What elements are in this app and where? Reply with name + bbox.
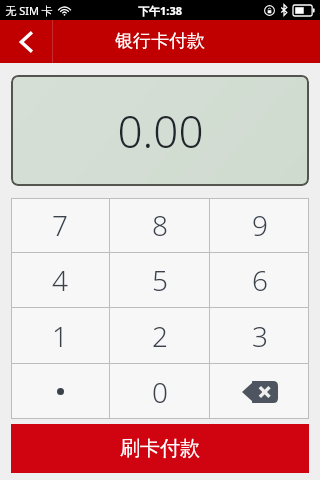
staticText: 7: [52, 206, 68, 244]
button[interactable]: 9: [210, 198, 309, 252]
staticText: 9: [252, 206, 268, 244]
button[interactable]: 4: [11, 253, 109, 307]
staticText: 2: [152, 317, 168, 355]
button[interactable]: 8: [110, 198, 209, 252]
staticText: 6: [252, 261, 268, 299]
button[interactable]: 5: [110, 253, 209, 307]
staticText: 3: [252, 317, 268, 355]
staticText: 下午1:38: [138, 3, 182, 18]
button[interactable]: 删除: [210, 364, 309, 419]
button[interactable]: 刷卡付款: [11, 424, 309, 473]
button[interactable]: 1: [11, 308, 109, 363]
staticText: 刷卡付款: [120, 436, 200, 461]
staticText: 无 SIM 卡: [5, 3, 53, 18]
staticText: 4: [52, 261, 68, 299]
button[interactable]: 2: [110, 308, 209, 363]
button[interactable]: 返回: [0, 20, 52, 63]
button[interactable]: 6: [210, 253, 309, 307]
staticText: 5: [152, 261, 168, 299]
button[interactable]: 0: [110, 364, 209, 419]
staticText: 银行卡付款: [115, 30, 205, 53]
button[interactable]: [11, 364, 109, 419]
staticText: 0.00: [117, 101, 204, 161]
staticText: 1: [52, 317, 68, 355]
button[interactable]: 3: [210, 308, 309, 363]
staticText: 8: [152, 206, 168, 244]
button[interactable]: 7: [11, 198, 109, 252]
staticText: 0: [152, 373, 168, 411]
